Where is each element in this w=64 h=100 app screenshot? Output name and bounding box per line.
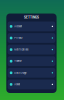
staticText: Data Usage (14, 71, 26, 74)
staticText: Account (14, 25, 22, 28)
staticText: Privacy (14, 36, 22, 39)
button[interactable]: Account (8, 21, 55, 31)
staticText: SETTINGS (24, 16, 39, 19)
staticText: Theme (14, 60, 21, 63)
button[interactable]: Notifications (8, 45, 55, 54)
staticText: About (14, 83, 20, 86)
button[interactable]: Privacy (8, 33, 55, 43)
button[interactable]: Theme (8, 56, 55, 66)
button[interactable]: Data Usage (8, 68, 55, 78)
staticText: Notifications (14, 48, 28, 51)
button[interactable]: About (8, 79, 55, 89)
